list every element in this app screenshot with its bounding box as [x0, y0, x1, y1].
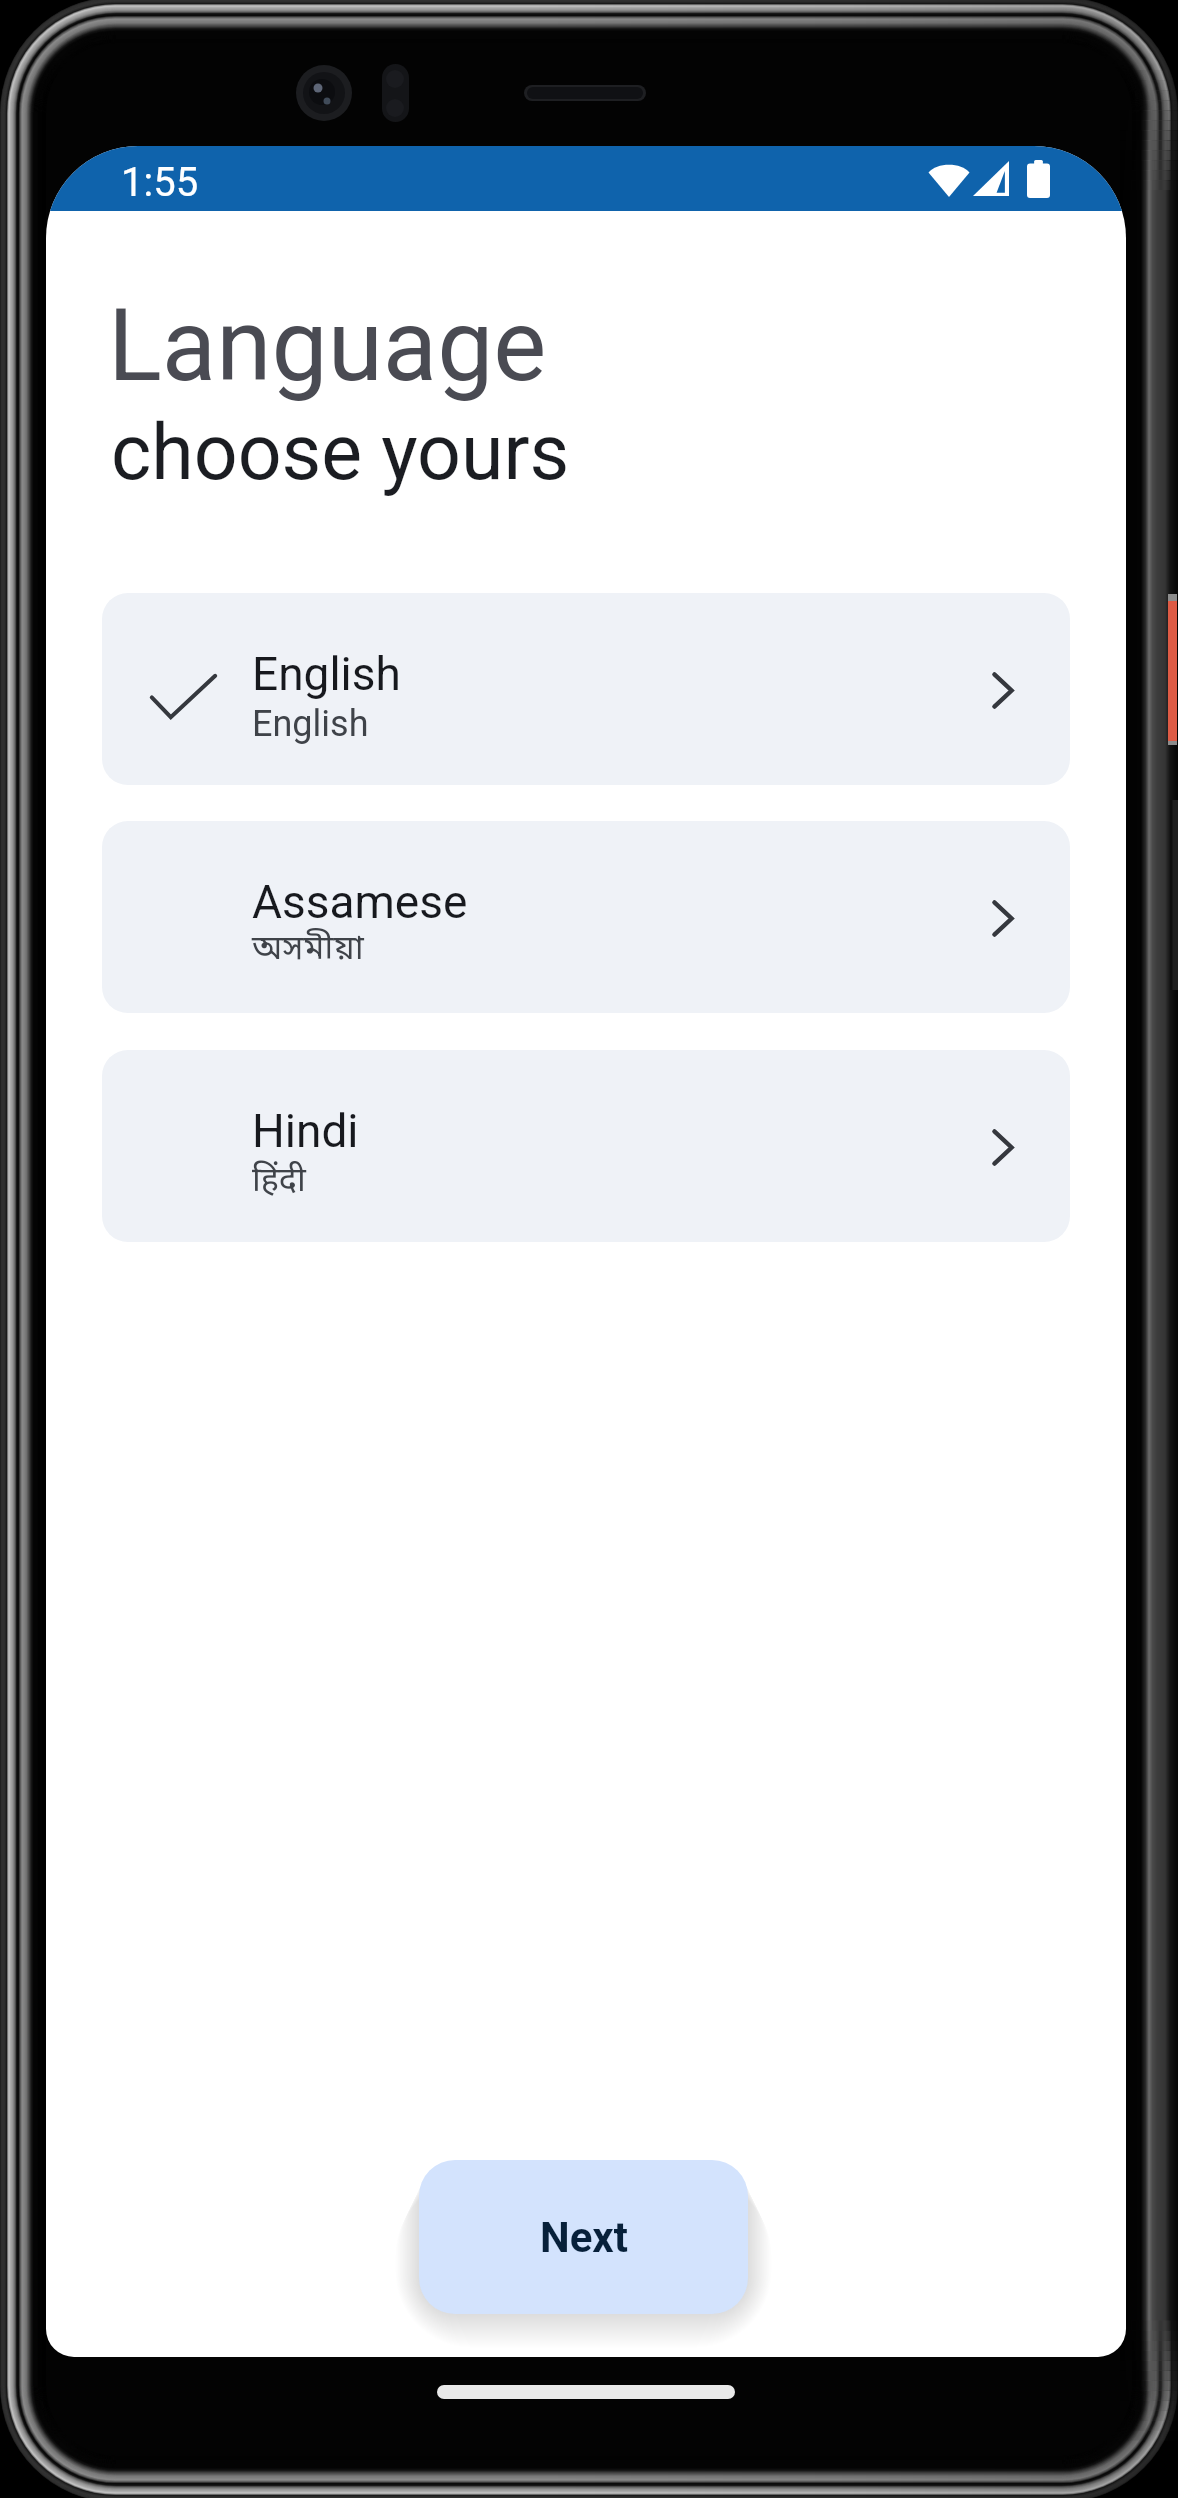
- staticText: Hindi: [252, 1104, 359, 1158]
- staticText: हिंदी: [252, 1155, 306, 1201]
- staticText: অসমীয়া: [252, 928, 364, 973]
- other: Open English: [992, 672, 1014, 709]
- other: Open Hindi: [992, 1129, 1014, 1166]
- button[interactable]: Hindi: [102, 1050, 1070, 1242]
- staticText: Next: [540, 2213, 628, 2262]
- button[interactable]: Next: [419, 2160, 748, 2314]
- button[interactable]: English: [102, 593, 1070, 785]
- staticText: 1:55: [121, 159, 199, 206]
- staticText: English: [252, 703, 369, 745]
- staticText: choose yours: [111, 408, 570, 498]
- button[interactable]: Assamese: [102, 821, 1070, 1013]
- staticText: English: [252, 647, 401, 701]
- other: Open Assamese: [992, 900, 1014, 937]
- staticText: Assamese: [252, 875, 468, 929]
- staticText: Language: [108, 287, 547, 404]
